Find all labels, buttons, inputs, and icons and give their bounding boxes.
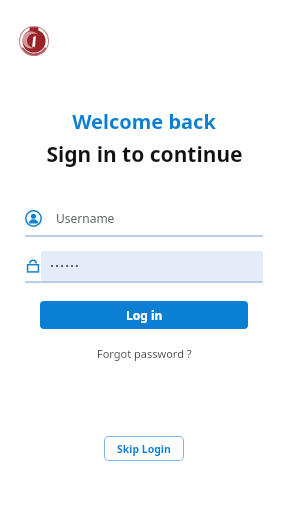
button[interactable]: Forgot password ? — [89, 343, 200, 364]
other: App logo — [19, 26, 49, 56]
button[interactable]: Skip Login — [104, 436, 184, 461]
staticText: Skip Login — [117, 442, 171, 456]
staticText: Forgot password ? — [97, 346, 192, 361]
button[interactable]: Username — [25, 201, 263, 235]
staticText: Welcome back — [72, 108, 216, 135]
staticText: Sign in to continue — [46, 140, 243, 169]
button[interactable]: Log in — [40, 301, 248, 329]
staticText: Username — [56, 210, 115, 226]
staticText: Log in — [126, 307, 163, 323]
button[interactable] — [25, 251, 263, 281]
